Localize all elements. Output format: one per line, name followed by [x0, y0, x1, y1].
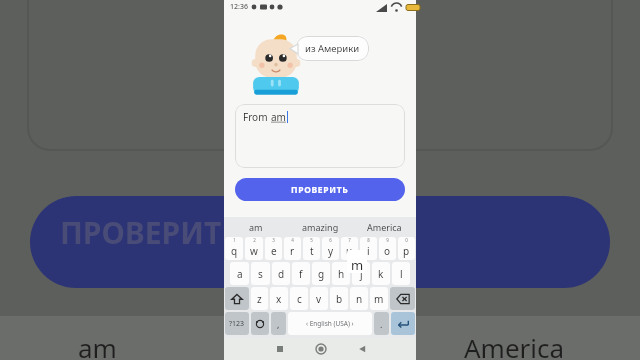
button[interactable]: s — [251, 262, 270, 285]
staticText: . — [380, 318, 383, 330]
staticText: h — [338, 267, 345, 281]
staticText: l — [400, 267, 403, 281]
staticText: 1 — [233, 237, 236, 243]
staticText: am — [78, 330, 117, 360]
button[interactable]: k — [372, 262, 390, 285]
button[interactable]: 7 — [341, 237, 358, 260]
staticText: am — [271, 110, 286, 124]
button[interactable]: n — [350, 287, 368, 310]
button[interactable]: , — [271, 312, 286, 335]
button[interactable]: z — [251, 287, 268, 310]
staticText: a — [237, 267, 243, 281]
staticText: ?123 — [229, 319, 245, 329]
staticText: e — [271, 244, 277, 258]
staticText: From — [243, 110, 271, 124]
button[interactable]: Home — [300, 338, 341, 360]
staticText: f — [299, 267, 303, 281]
button[interactable]: j — [352, 262, 370, 285]
button[interactable]: v — [310, 287, 328, 310]
button[interactable]: amazing — [288, 217, 352, 237]
staticText: t — [310, 244, 314, 258]
staticText: s — [258, 267, 263, 281]
staticText: m — [374, 292, 384, 306]
button[interactable]: Back — [341, 338, 382, 360]
staticText: 9 — [386, 237, 389, 243]
staticText: am — [249, 221, 263, 233]
staticText: w — [250, 244, 258, 258]
button[interactable]: b — [330, 287, 348, 310]
button[interactable]: ПРОВЕРИТЬ — [235, 178, 405, 201]
staticText: 2 — [253, 237, 256, 243]
button[interactable]: 9 — [379, 237, 396, 260]
staticText: 6 — [329, 237, 332, 243]
staticText: 7 — [348, 237, 351, 243]
button[interactable]: America — [352, 217, 416, 237]
staticText: k — [378, 267, 384, 281]
button[interactable]: 6 — [322, 237, 339, 260]
staticText: America — [464, 330, 565, 360]
staticText: r — [290, 244, 295, 258]
button[interactable]: am — [224, 217, 288, 237]
staticText: d — [278, 267, 285, 281]
staticText: y — [328, 244, 334, 258]
staticText: из Америки — [305, 42, 360, 55]
button[interactable]: From — [235, 104, 405, 168]
staticText: i — [367, 244, 370, 258]
button[interactable]: 3 — [265, 237, 282, 260]
staticText: q — [231, 244, 238, 258]
button[interactable]: 2 — [245, 237, 263, 260]
staticText: 3 — [272, 237, 275, 243]
button[interactable]: Enter — [391, 312, 415, 335]
button[interactable]: 0 — [398, 237, 415, 260]
button[interactable]: l — [392, 262, 410, 285]
staticText: 5 — [310, 237, 313, 243]
button[interactable]: 8 — [360, 237, 377, 260]
staticText: m — [351, 256, 364, 273]
staticText: j — [360, 267, 363, 281]
staticText: p — [403, 244, 410, 258]
button[interactable]: 5 — [303, 237, 320, 260]
staticText: v — [316, 292, 322, 306]
staticText: ПРОВЕРИТЬ — [60, 212, 241, 253]
button[interactable]: m — [370, 287, 388, 310]
staticText: b — [336, 292, 343, 306]
button[interactable]: c — [290, 287, 308, 310]
button[interactable]: d — [272, 262, 290, 285]
staticText: 12:36 — [230, 2, 248, 12]
button[interactable]: Shift — [225, 287, 249, 310]
button[interactable]: a — [230, 262, 249, 285]
button[interactable]: h — [332, 262, 350, 285]
button[interactable]: 1 — [225, 237, 243, 260]
button[interactable]: ?123 — [225, 312, 249, 335]
staticText: 8 — [367, 237, 370, 243]
staticText: z — [257, 292, 262, 306]
staticText: c — [297, 292, 302, 306]
button[interactable]: ‹ English (USA) › — [288, 312, 372, 335]
button[interactable]: Recents — [259, 338, 300, 360]
staticText: x — [276, 292, 282, 306]
button[interactable]: f — [292, 262, 310, 285]
staticText: n — [356, 292, 363, 306]
staticText: 4 — [291, 237, 294, 243]
staticText: amazing — [302, 221, 339, 233]
staticText: 0 — [405, 237, 408, 243]
staticText: ‹ English (USA) › — [306, 319, 354, 328]
button[interactable]: Backspace — [390, 287, 415, 310]
button[interactable]: 4 — [284, 237, 301, 260]
staticText: u — [346, 244, 353, 258]
staticText: g — [318, 267, 325, 281]
button[interactable]: x — [270, 287, 288, 310]
button[interactable]: . — [374, 312, 389, 335]
staticText: o — [384, 244, 391, 258]
staticText: America — [367, 221, 402, 233]
button[interactable]: Emoji — [251, 312, 269, 335]
staticText: , — [277, 318, 280, 330]
button[interactable]: g — [312, 262, 330, 285]
staticText: ПРОВЕРИТЬ — [291, 184, 349, 196]
